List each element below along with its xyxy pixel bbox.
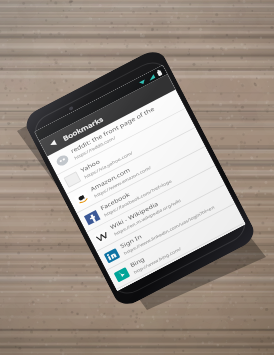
staticText: https://www.linkedin.com/uas/login?hl=en <box>123 204 216 256</box>
staticText: Facebook <box>99 190 132 213</box>
staticText: https://en.m.wikipedia.org/wiki <box>113 197 183 237</box>
staticText: https://via.yahoo.com/ <box>83 150 135 180</box>
staticText: https://www.amazon.com/ <box>93 165 153 199</box>
staticText: Wiki - Wikipedia <box>109 200 160 232</box>
staticText: Sign In <box>119 233 143 251</box>
button[interactable]: Bing <box>107 204 245 290</box>
staticText: Bing <box>129 256 146 270</box>
button[interactable]: Sign In <box>97 185 235 271</box>
button[interactable]: Facebook <box>77 147 215 233</box>
button[interactable]: reddit: the front page of the internet <box>47 90 185 175</box>
staticText: Bookmarks <box>61 114 105 143</box>
button[interactable]: Wiki - Wikipedia <box>87 166 225 252</box>
staticText: Amazon.com <box>89 166 132 194</box>
staticText: https://reddit.com/ <box>73 135 117 161</box>
staticText: http://www.bing.com/ <box>133 246 182 275</box>
staticText: https://facebook.com/?ref=logo <box>103 178 174 218</box>
button[interactable]: Navigate up <box>39 131 67 156</box>
staticText: Yahoo <box>79 158 102 174</box>
button[interactable]: Amazon.com <box>67 128 205 213</box>
staticText: reddit: the front page of the internet <box>69 95 176 155</box>
button[interactable]: Yahoo <box>57 109 195 194</box>
